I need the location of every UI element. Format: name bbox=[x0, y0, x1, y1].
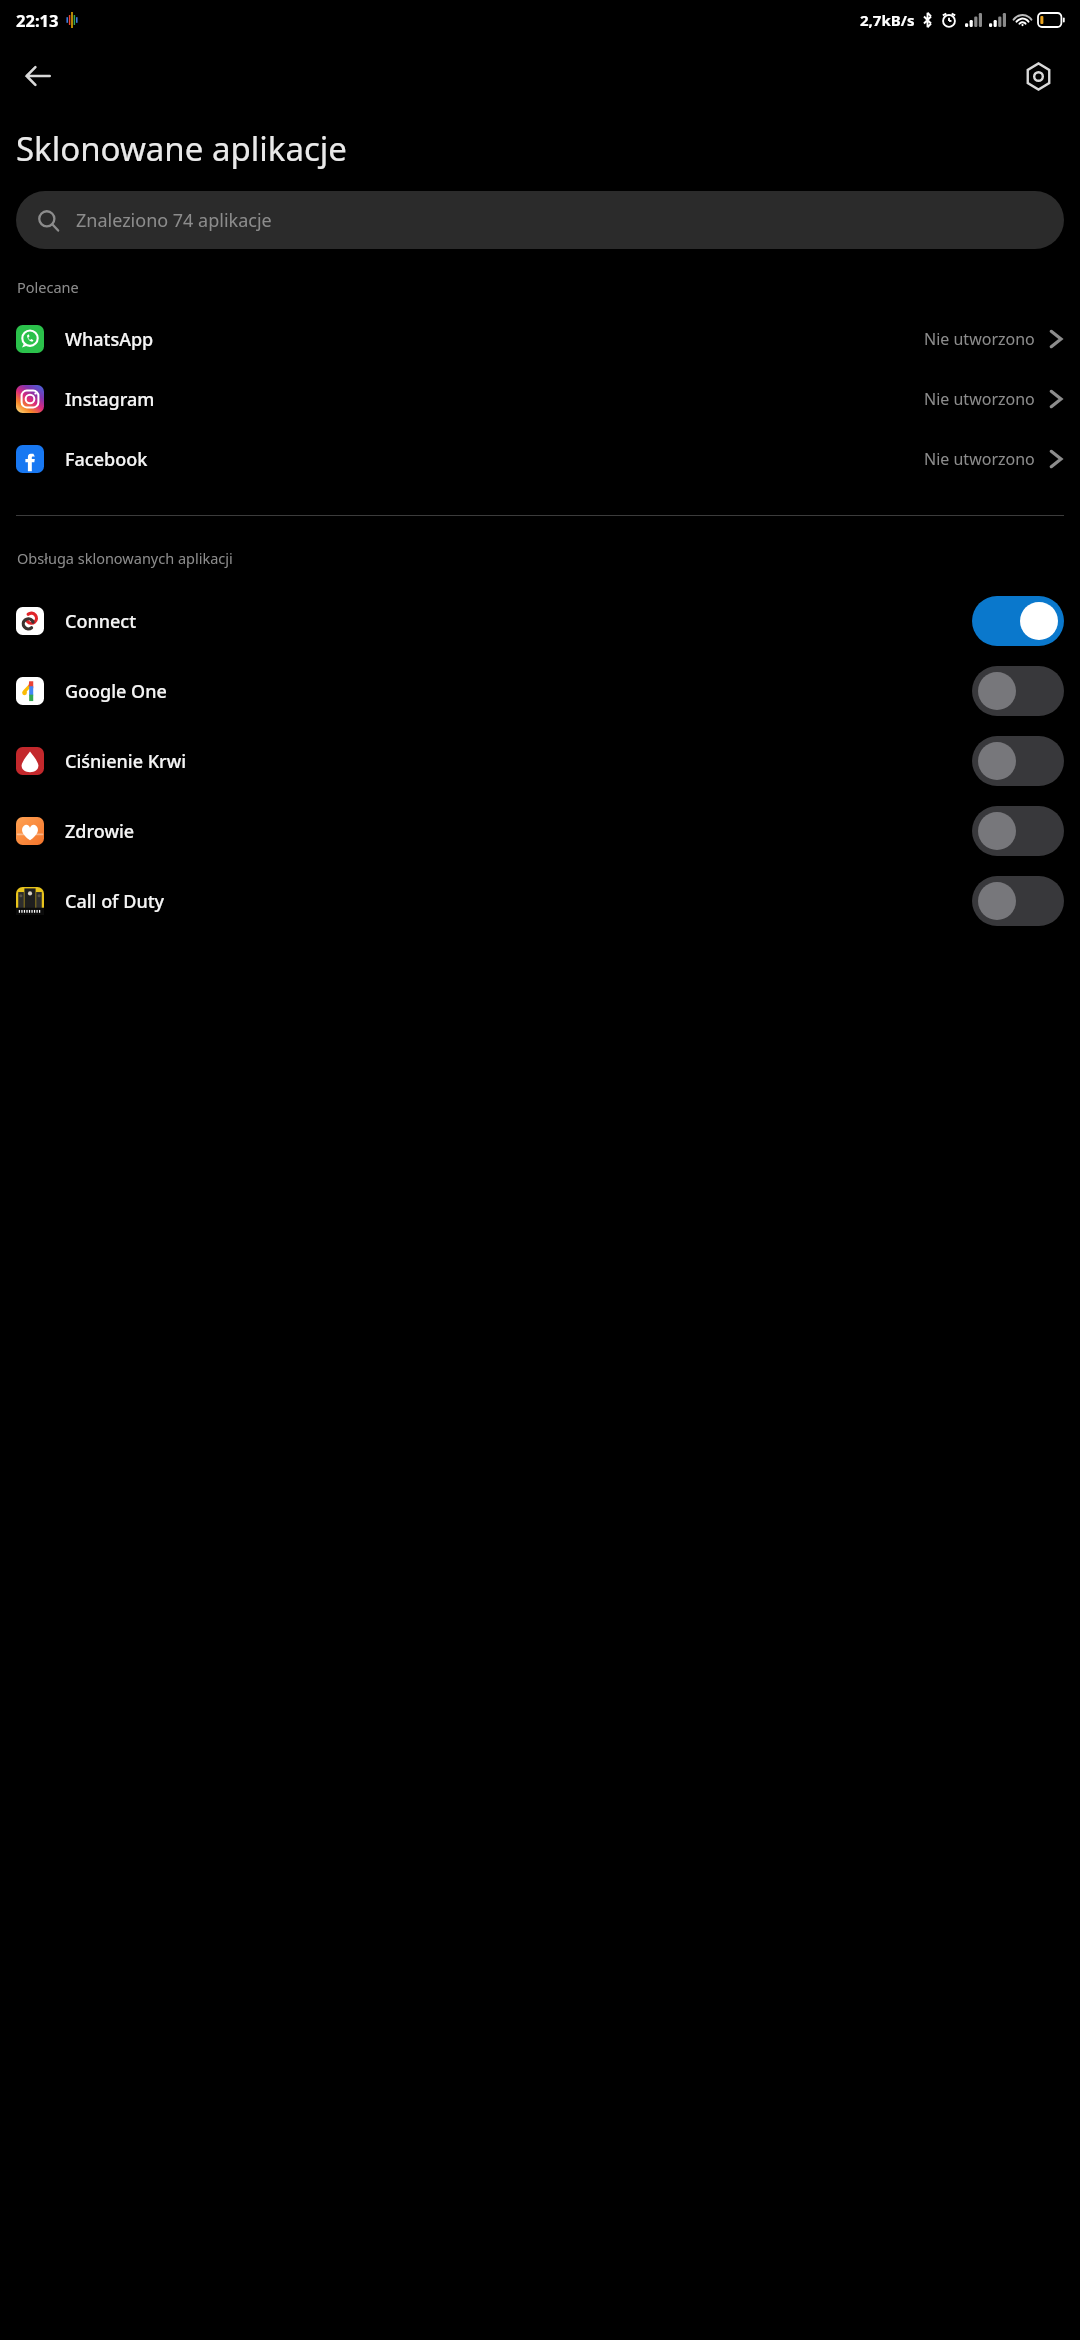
staticText: Nie utworzono bbox=[924, 448, 1035, 470]
button[interactable]: Wyłączone bbox=[972, 806, 1064, 856]
staticText: Obsługa sklonowanych aplikacji bbox=[17, 548, 233, 568]
staticText: WhatsApp bbox=[65, 327, 154, 352]
staticText: Call of Duty bbox=[65, 889, 165, 914]
staticText: Zdrowie bbox=[65, 819, 135, 844]
button[interactable]: Wstecz bbox=[10, 48, 66, 104]
staticText: Connect bbox=[65, 609, 137, 634]
staticText: Nie utworzono bbox=[924, 388, 1035, 410]
button[interactable]: Wyłączone bbox=[972, 736, 1064, 786]
staticText: Sklonowane aplikacje bbox=[16, 126, 347, 171]
button[interactable]: Instagram bbox=[0, 369, 1080, 429]
button[interactable]: Ciśnienie Krwi bbox=[0, 726, 1080, 796]
staticText: Znaleziono 74 aplikacje bbox=[76, 208, 272, 233]
button[interactable]: Facebook bbox=[0, 429, 1080, 489]
staticText: Polecane bbox=[17, 277, 79, 297]
button[interactable]: Włączone bbox=[972, 596, 1064, 646]
staticText: Instagram bbox=[65, 387, 155, 412]
button[interactable]: Wyłączone bbox=[972, 876, 1064, 926]
staticText: Facebook bbox=[65, 447, 148, 472]
button[interactable]: Call of Duty bbox=[0, 866, 1080, 936]
staticText: Ciśnienie Krwi bbox=[65, 749, 187, 774]
button[interactable]: Google One bbox=[0, 656, 1080, 726]
button[interactable]: Zdrowie bbox=[0, 796, 1080, 866]
staticText: 22:13 bbox=[16, 9, 59, 31]
staticText: Nie utworzono bbox=[924, 328, 1035, 350]
button[interactable]: Ustawienia bbox=[1010, 48, 1066, 104]
button[interactable]: Znaleziono 74 aplikacje bbox=[16, 191, 1064, 249]
staticText: Google One bbox=[65, 679, 167, 704]
button[interactable]: Wyłączone bbox=[972, 666, 1064, 716]
staticText: 2,7kB/s bbox=[860, 10, 915, 30]
button[interactable]: WhatsApp bbox=[0, 309, 1080, 369]
button[interactable]: Connect bbox=[0, 586, 1080, 656]
